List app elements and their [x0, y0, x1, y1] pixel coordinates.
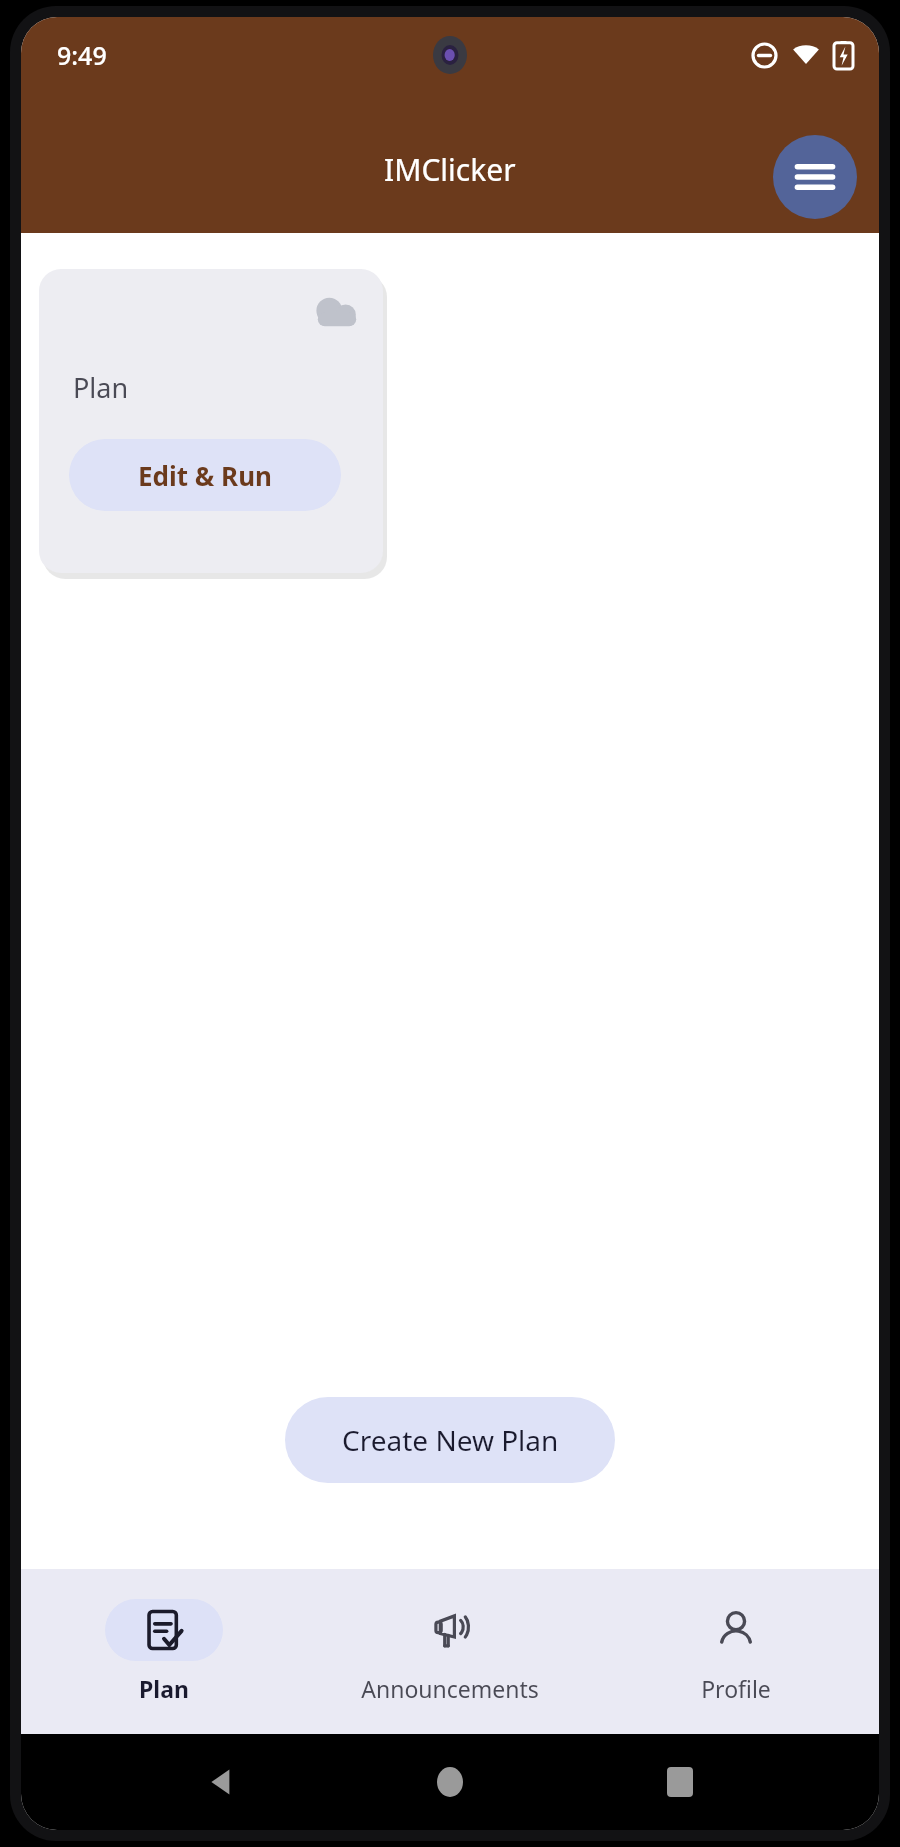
button[interactable]: Home — [420, 1752, 480, 1812]
button[interactable]: Edit & Run — [69, 439, 341, 511]
staticText: Plan — [139, 1673, 189, 1704]
button[interactable]: Menu — [773, 135, 857, 219]
button[interactable]: Plan — [39, 269, 383, 573]
button[interactable]: Create New Plan — [285, 1397, 615, 1483]
staticText: IMClicker — [384, 149, 516, 190]
button[interactable]: Announcements — [307, 1569, 593, 1734]
staticText: Plan — [73, 369, 129, 406]
staticText: Profile — [701, 1673, 771, 1704]
button[interactable]: Recent apps — [650, 1752, 710, 1812]
button[interactable]: Back — [191, 1752, 251, 1812]
staticText: 9:49 — [57, 38, 107, 72]
button[interactable]: Plan — [21, 1569, 307, 1734]
staticText: Announcements — [361, 1673, 539, 1704]
staticText: Create New Plan — [342, 1421, 559, 1459]
staticText: Edit & Run — [138, 458, 272, 493]
button[interactable]: Profile — [593, 1569, 879, 1734]
